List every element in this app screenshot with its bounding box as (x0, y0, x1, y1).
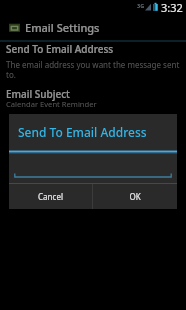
staticText: Email Subject (6, 87, 70, 101)
staticText: Cancel (38, 191, 63, 202)
button[interactable]: Cancel (9, 184, 92, 209)
staticText: OK (129, 191, 141, 202)
staticText: 3:32 (161, 0, 183, 14)
staticText: Email Settings (25, 20, 100, 35)
button[interactable]: Email Subject (6, 87, 180, 111)
staticText: Send To Email Address (18, 124, 147, 140)
staticText: Send To Email Address (6, 42, 114, 56)
button[interactable]: OK (93, 184, 177, 209)
staticText: The email address you want the message s… (6, 59, 180, 80)
staticText: Calendar Event Reminder (6, 99, 97, 109)
staticText: 3G (137, 2, 145, 9)
button[interactable]: Send To Email Address (6, 42, 180, 80)
button[interactable]: Email Settings (0, 14, 186, 40)
